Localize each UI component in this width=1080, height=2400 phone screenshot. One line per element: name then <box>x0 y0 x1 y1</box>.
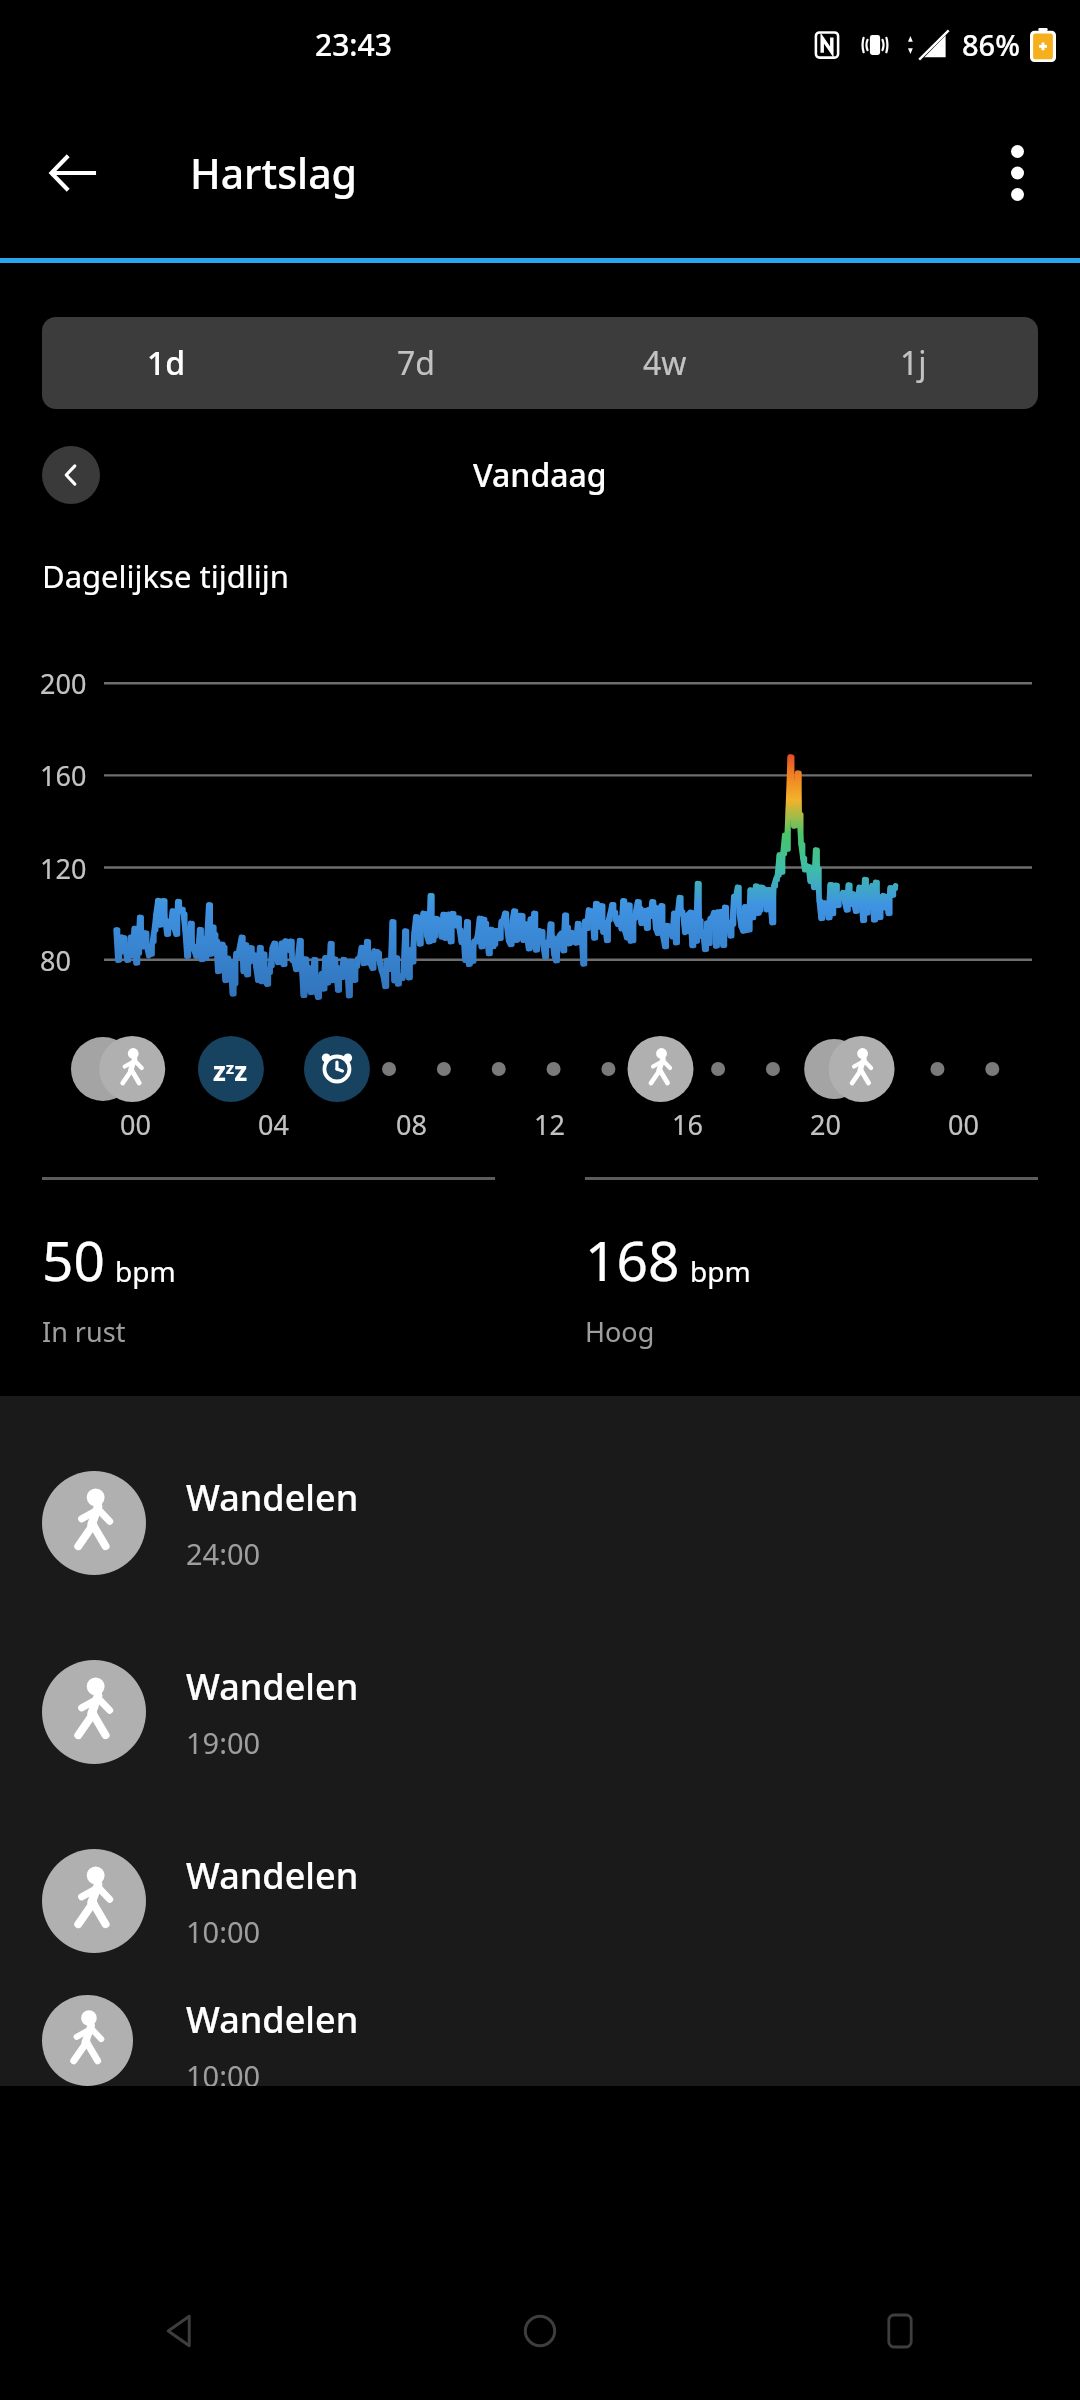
staticText: 1j <box>900 341 927 385</box>
staticText: 120 <box>40 850 87 887</box>
staticText: 10:00 <box>186 2056 261 2086</box>
button[interactable]: Meer opties <box>974 130 1060 216</box>
staticText: 168 <box>585 1222 680 1297</box>
staticText: Hoog <box>585 1313 655 1350</box>
button[interactable]: Wandelen <box>0 1806 1080 1995</box>
staticText: bpm <box>115 1252 176 1290</box>
staticText: Vandaag <box>473 453 607 497</box>
staticText: 86% <box>962 25 1020 64</box>
button[interactable]: 50 <box>42 1177 495 1350</box>
staticText: 50 <box>42 1222 105 1297</box>
staticText: 10:00 <box>186 1912 261 1951</box>
staticText: 00 <box>120 1106 151 1143</box>
button[interactable]: Terug <box>30 130 116 216</box>
button[interactable]: 7d <box>291 317 540 409</box>
staticText: Hartslag <box>190 145 358 201</box>
button[interactable]: Wandelen <box>0 1428 1080 1617</box>
staticText: 00 <box>948 1106 979 1143</box>
staticText: 80 <box>40 942 71 979</box>
button[interactable]: Start <box>360 2262 720 2400</box>
staticText: Wandelen <box>186 1473 359 1522</box>
staticText: 16 <box>672 1106 703 1143</box>
button[interactable]: Vorige dag <box>42 446 100 504</box>
staticText: 7d <box>397 341 435 385</box>
staticText: zᶻz <box>213 1053 247 1088</box>
staticText: 24:00 <box>186 1534 261 1573</box>
button[interactable]: Wandelen <box>0 1617 1080 1806</box>
staticText: Dagelijkse tijdlijn <box>42 555 289 597</box>
staticText: Wandelen <box>186 1662 359 1711</box>
staticText: Wandelen <box>186 1995 359 2044</box>
button[interactable]: 168 <box>585 1177 1038 1350</box>
staticText: 04 <box>258 1106 289 1143</box>
button[interactable]: 1d <box>42 317 291 409</box>
staticText: 12 <box>534 1106 565 1143</box>
staticText: 160 <box>40 757 87 794</box>
button[interactable]: 4w <box>540 317 789 409</box>
staticText: 19:00 <box>186 1723 261 1762</box>
button[interactable]: Wandelen <box>0 1995 1080 2086</box>
button[interactable]: Recente apps <box>720 2262 1080 2400</box>
staticText: In rust <box>42 1313 126 1350</box>
staticText: bpm <box>690 1252 751 1290</box>
staticText: Wandelen <box>186 1851 359 1900</box>
button[interactable]: Terug <box>0 2262 360 2400</box>
staticText: 08 <box>396 1106 427 1143</box>
staticText: 200 <box>40 665 87 702</box>
staticText: 1d <box>147 341 186 385</box>
staticText: 20 <box>810 1106 841 1143</box>
button[interactable]: 1j <box>789 317 1038 409</box>
staticText: 4w <box>643 341 687 385</box>
staticText: 23:43 <box>315 24 392 65</box>
